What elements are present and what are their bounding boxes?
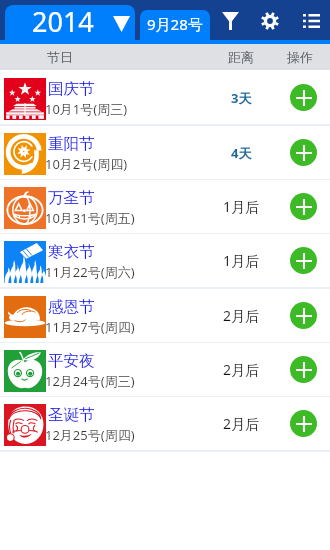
staticText: 12月25号(周四) bbox=[45, 426, 135, 444]
button[interactable]: Add bbox=[276, 289, 330, 342]
button[interactable]: 重阳节 bbox=[0, 126, 330, 179]
button[interactable]: 国庆节 bbox=[0, 71, 330, 124]
button[interactable]: 万圣节 bbox=[0, 180, 330, 233]
staticText: 11月27号(周四) bbox=[45, 318, 135, 336]
staticText: 国庆节 bbox=[48, 79, 95, 99]
staticText: 1月后 bbox=[223, 197, 260, 216]
button[interactable]: Add bbox=[276, 180, 330, 233]
button[interactable]: Filter bbox=[212, 3, 248, 39]
staticText: 10月1号(周三) bbox=[45, 100, 128, 118]
staticText: 寒衣节 bbox=[48, 242, 95, 262]
staticText: 2月后 bbox=[223, 414, 260, 433]
staticText: 2014 bbox=[32, 5, 94, 40]
button[interactable]: 寒衣节 bbox=[0, 234, 330, 287]
button[interactable]: Add bbox=[276, 397, 330, 450]
staticText: 节日 bbox=[47, 49, 73, 65]
staticText: 距离 bbox=[228, 49, 254, 65]
button[interactable]: Settings bbox=[252, 3, 288, 39]
button[interactable]: 平安夜 bbox=[0, 343, 330, 396]
staticText: 2月后 bbox=[223, 360, 260, 379]
button[interactable]: 2014 bbox=[5, 5, 135, 44]
button[interactable]: Add bbox=[276, 126, 330, 179]
button[interactable]: Menu bbox=[293, 3, 329, 39]
staticText: 重阳节 bbox=[48, 134, 95, 154]
staticText: 圣诞节 bbox=[48, 405, 95, 425]
button[interactable]: 感恩节 bbox=[0, 289, 330, 342]
staticText: 4天 bbox=[231, 144, 252, 162]
staticText: 10月31号(周五) bbox=[45, 209, 135, 227]
staticText: 平安夜 bbox=[48, 351, 95, 371]
button[interactable]: Add bbox=[276, 71, 330, 124]
staticText: 3天 bbox=[231, 89, 252, 107]
staticText: 9月28号 bbox=[147, 14, 203, 34]
staticText: 感恩节 bbox=[48, 297, 95, 317]
button[interactable]: 9月28号 bbox=[140, 10, 210, 44]
staticText: 1月后 bbox=[223, 251, 260, 270]
staticText: 10月2号(周四) bbox=[45, 155, 128, 173]
staticText: 11月22号(周六) bbox=[45, 263, 135, 281]
staticText: 操作 bbox=[287, 49, 313, 65]
staticText: 万圣节 bbox=[48, 188, 95, 208]
staticText: 12月24号(周三) bbox=[45, 372, 135, 390]
button[interactable]: Add bbox=[276, 343, 330, 396]
button[interactable]: 圣诞节 bbox=[0, 397, 330, 450]
button[interactable]: Add bbox=[276, 234, 330, 287]
staticText: 2月后 bbox=[223, 306, 260, 325]
